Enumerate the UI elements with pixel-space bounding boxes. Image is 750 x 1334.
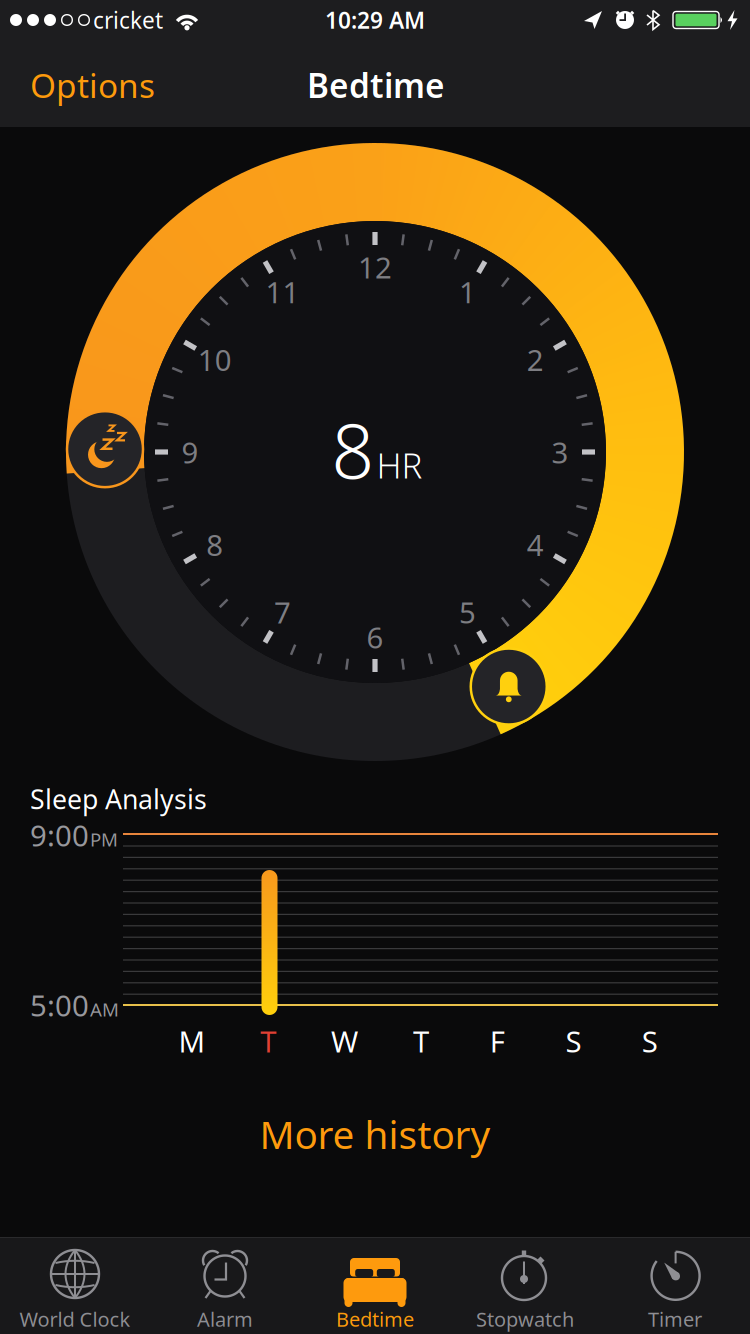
staticText: 12 <box>358 247 392 286</box>
staticText: 5 <box>459 593 476 632</box>
staticText: W <box>331 1021 358 1060</box>
staticText: F <box>490 1021 505 1060</box>
button[interactable]: Bedtime <box>66 410 144 488</box>
staticText: Alarm <box>197 1306 253 1332</box>
staticText: S <box>642 1021 658 1060</box>
button[interactable]: Timer <box>600 1237 750 1334</box>
staticText: 8 <box>331 400 374 499</box>
staticText: cricket <box>93 5 163 35</box>
staticText: 7 <box>274 593 291 632</box>
staticText: T <box>260 1021 276 1060</box>
staticText: T <box>413 1021 429 1060</box>
staticText: 8 <box>206 525 223 564</box>
staticText: Sleep Analysis <box>30 781 207 817</box>
button[interactable]: Alarm <box>150 1237 300 1334</box>
staticText: 6 <box>366 617 383 656</box>
staticText: Bedtime <box>336 1306 414 1332</box>
staticText: 11 <box>265 272 299 311</box>
button[interactable]: More history <box>150 1104 600 1164</box>
staticText: Stopwatch <box>476 1306 574 1332</box>
staticText: Timer <box>648 1306 702 1332</box>
button[interactable]: Stopwatch <box>450 1237 600 1334</box>
staticText: M <box>178 1021 205 1060</box>
staticText: S <box>565 1021 581 1060</box>
staticText: HR <box>376 442 422 488</box>
button[interactable]: World Clock <box>0 1237 150 1334</box>
staticText: 10 <box>198 340 232 379</box>
staticText: PM <box>90 827 118 851</box>
staticText: 9 <box>181 432 198 471</box>
button[interactable]: Options <box>30 50 230 120</box>
staticText: 5:00 <box>30 985 89 1024</box>
staticText: Bedtime <box>307 63 445 107</box>
staticText: Options <box>30 63 155 107</box>
staticText: 9:00 <box>30 815 89 854</box>
staticText: World Clock <box>19 1306 130 1332</box>
staticText: 2 <box>527 340 544 379</box>
button[interactable]: Bedtime <box>300 1237 450 1334</box>
staticText: 10:29 AM <box>325 5 425 35</box>
staticText: 3 <box>551 432 568 471</box>
staticText: 1 <box>459 272 476 311</box>
button[interactable]: Wake up <box>470 647 548 725</box>
staticText: More history <box>259 1108 490 1160</box>
staticText: AM <box>90 997 119 1021</box>
staticText: 4 <box>527 525 544 564</box>
